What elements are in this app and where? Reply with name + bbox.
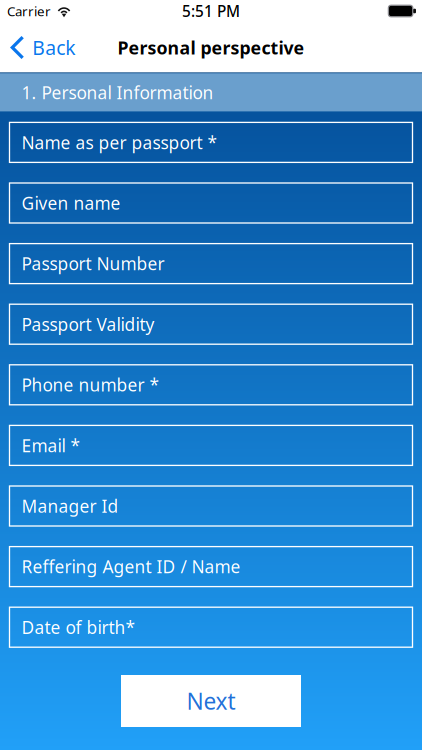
staticText: Manager Id <box>21 494 118 517</box>
button[interactable]: Name as per passport * <box>9 122 412 162</box>
staticText: Carrier <box>7 2 51 20</box>
staticText: Given name <box>21 191 120 214</box>
button[interactable]: Email * <box>9 425 412 465</box>
staticText: Passport Number <box>21 252 164 275</box>
button[interactable]: Manager Id <box>9 486 412 526</box>
button[interactable]: Next <box>121 675 301 727</box>
staticText: Personal perspective <box>117 36 304 59</box>
button[interactable]: Phone number * <box>9 365 412 405</box>
button[interactable]: Back <box>0 25 85 69</box>
staticText: Next <box>186 686 235 716</box>
button[interactable]: Given name <box>9 183 412 223</box>
button[interactable]: Date of birth* <box>9 607 412 647</box>
staticText: Phone number * <box>21 373 159 396</box>
button[interactable]: Passport Validity <box>9 304 412 344</box>
staticText: Name as per passport * <box>21 131 217 154</box>
staticText: Reffering Agent ID / Name <box>21 555 240 578</box>
staticText: Passport Validity <box>21 313 154 336</box>
staticText: Date of birth* <box>21 616 135 639</box>
button[interactable]: Passport Number <box>9 244 412 284</box>
staticText: Back <box>32 35 75 60</box>
button[interactable]: Reffering Agent ID / Name <box>9 547 412 587</box>
staticText: Email * <box>21 434 80 457</box>
staticText: 1. Personal Information <box>21 81 213 104</box>
staticText: 5:51 PM <box>182 1 240 21</box>
